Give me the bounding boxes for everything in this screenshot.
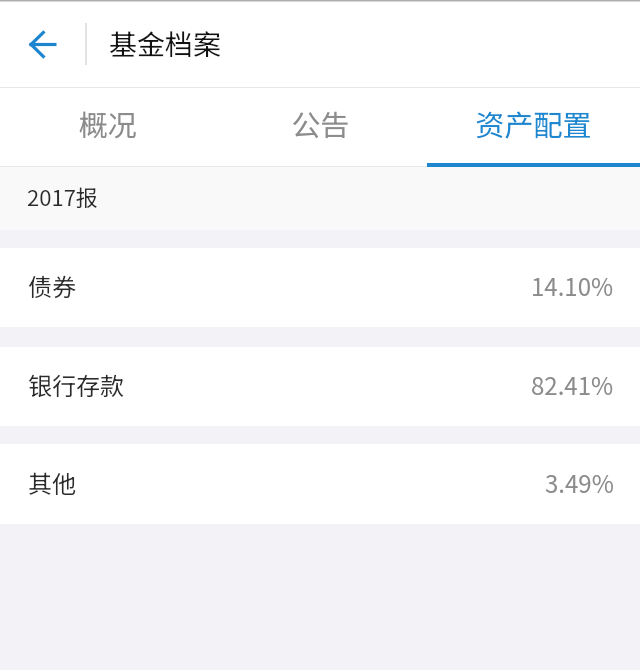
staticText: 82.41% [531, 367, 614, 402]
button[interactable]: 其他 [0, 444, 640, 524]
staticText: 3.49% [545, 465, 614, 500]
staticText: 概况 [78, 102, 137, 144]
button[interactable]: 资产配置 [427, 88, 640, 167]
button[interactable]: 概况 [0, 88, 214, 167]
staticText: 银行存款 [28, 367, 124, 402]
staticText: 14.10% [531, 268, 614, 303]
staticText: 公告 [291, 102, 350, 144]
staticText: 基金档案 [109, 23, 222, 64]
button[interactable]: 公告 [214, 88, 427, 167]
staticText: 2017报 [27, 180, 98, 212]
button[interactable]: 债券 [0, 248, 640, 327]
staticText: 债券 [28, 268, 76, 303]
button[interactable]: Back [11, 12, 75, 76]
staticText: 资产配置 [475, 102, 592, 144]
button[interactable]: 银行存款 [0, 347, 640, 426]
staticText: 其他 [28, 465, 76, 500]
